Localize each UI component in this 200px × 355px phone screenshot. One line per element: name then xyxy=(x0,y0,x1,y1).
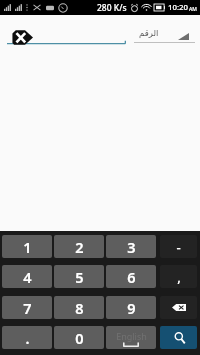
staticText: 7 xyxy=(23,298,32,318)
staticText: 10:20 xyxy=(168,2,188,13)
staticText: الرقم xyxy=(139,28,159,38)
staticText: 8 xyxy=(75,298,84,318)
staticText: 6 xyxy=(127,267,136,287)
button[interactable]: 7 xyxy=(2,296,52,319)
staticText: 4 xyxy=(23,267,32,287)
button[interactable]: . xyxy=(2,326,52,349)
staticText: 9 xyxy=(127,298,136,318)
staticText: 280 K/s xyxy=(97,2,127,14)
staticText: 2 xyxy=(75,237,84,257)
staticText: - xyxy=(176,238,181,256)
staticText: 0 xyxy=(75,328,84,348)
button[interactable]: English xyxy=(106,326,156,349)
button[interactable]: 9 xyxy=(106,296,156,319)
button[interactable]: 3 xyxy=(106,235,156,258)
button[interactable]: الرقم xyxy=(134,28,195,43)
staticText: AM xyxy=(189,6,197,13)
button[interactable]: Search xyxy=(160,326,197,349)
staticText: 1 xyxy=(23,237,32,257)
button[interactable]: 8 xyxy=(54,296,104,319)
button[interactable]: 2 xyxy=(54,235,104,258)
button[interactable]: Backspace xyxy=(160,296,197,319)
staticText: English xyxy=(116,330,147,342)
button[interactable]: 0 xyxy=(54,326,104,349)
button[interactable]: 6 xyxy=(106,265,156,288)
button[interactable]: 1 xyxy=(2,235,52,258)
button[interactable]: 5 xyxy=(54,265,104,288)
staticText: 5 xyxy=(75,267,84,287)
button[interactable]: Clear text xyxy=(12,30,33,45)
button[interactable]: , xyxy=(160,265,197,288)
button[interactable]: 4 xyxy=(2,265,52,288)
staticText: . xyxy=(25,328,30,348)
staticText: , xyxy=(177,268,181,286)
button[interactable]: - xyxy=(160,235,197,258)
staticText: 3 xyxy=(127,237,136,257)
